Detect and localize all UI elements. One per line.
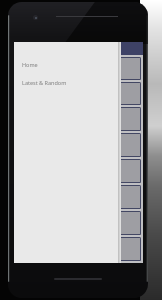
button[interactable] [16, 237, 141, 261]
button[interactable]: જીવન એક સંઘર્ષ છે [16, 159, 141, 183]
button[interactable] [16, 107, 141, 131]
button[interactable]: Latest & Random [14, 73, 121, 91]
button[interactable]: Gujarati Suvichar 2019 [14, 42, 143, 55]
button[interactable] [16, 133, 141, 157]
button[interactable]: Home [14, 55, 121, 73]
button[interactable]: સફળતા મહેનતનું ફળ છે [16, 211, 141, 235]
button[interactable]: સમય કોઈની રાહ જોતો નથી [16, 57, 141, 80]
button[interactable] [16, 82, 141, 105]
staticText: Latest & Random [22, 79, 67, 86]
staticText: Home [22, 61, 38, 68]
button[interactable] [16, 185, 141, 209]
